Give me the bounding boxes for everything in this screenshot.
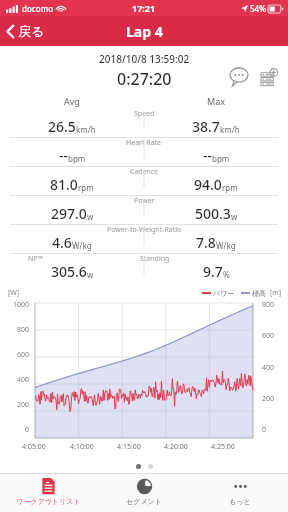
staticText: Lap 4	[126, 22, 163, 41]
staticText: W/kg	[72, 240, 92, 251]
staticText: --	[59, 146, 68, 165]
staticText: Power	[134, 196, 155, 206]
button[interactable]: Cadence	[0, 167, 288, 196]
staticText: 400	[17, 375, 30, 385]
staticText: 17:21	[132, 2, 156, 14]
staticText: Power-to-Weight-Ratio	[107, 225, 182, 235]
staticText: ワークアウトリスト	[16, 497, 81, 506]
staticText: 0:27:20	[117, 68, 172, 90]
staticText: [W]	[8, 288, 20, 298]
staticText: 800	[17, 325, 30, 335]
staticText: 305.6	[51, 262, 87, 281]
button[interactable]: Comment	[227, 65, 251, 89]
staticText: [m]	[270, 288, 282, 298]
staticText: 94.0	[194, 175, 222, 194]
staticText: 800	[262, 300, 275, 310]
staticText: km/h	[220, 124, 240, 135]
button[interactable]: NP™	[0, 254, 288, 283]
button[interactable]: Add data	[257, 65, 281, 89]
staticText: 4.6	[52, 233, 72, 252]
staticText: 81.0	[50, 175, 78, 194]
staticText: 7.8	[196, 233, 216, 252]
staticText: パワー	[213, 289, 235, 298]
staticText: 4:05:00	[22, 442, 46, 452]
staticText: Heart Rate	[126, 138, 162, 148]
button[interactable]: セグメント	[96, 474, 192, 512]
button[interactable]: もっと	[192, 474, 288, 512]
staticText: docomo	[22, 3, 54, 14]
staticText: 38.7	[192, 117, 220, 136]
staticText: 54%	[250, 3, 266, 14]
staticText: rpm	[78, 182, 94, 193]
staticText: 戻る	[18, 23, 45, 39]
button[interactable]: ワークアウトリスト	[0, 474, 96, 512]
button[interactable]: Power-to-Weight-Ratio	[0, 225, 288, 254]
staticText: 600	[17, 350, 30, 360]
staticText: 297.0	[51, 204, 87, 223]
staticText: bpm	[68, 153, 86, 164]
button[interactable]: Heart Rate	[0, 138, 288, 167]
staticText: Avg	[64, 95, 80, 107]
staticText: NP™	[28, 254, 43, 264]
staticText: 4:20:00	[164, 442, 188, 452]
staticText: --	[203, 146, 212, 165]
staticText: Cadence	[130, 167, 159, 177]
staticText: Max	[207, 95, 225, 107]
button[interactable]: Speed	[0, 109, 288, 138]
staticText: rpm	[222, 182, 238, 193]
staticText: 9.7	[203, 262, 223, 281]
staticText: W/kg	[216, 240, 236, 251]
staticText: Standing	[140, 254, 170, 264]
staticText: 26.5	[48, 117, 76, 136]
button[interactable]: Power	[0, 196, 288, 225]
staticText: 500.3	[195, 204, 231, 223]
staticText: 4:15:00	[117, 442, 141, 452]
staticText: 200	[17, 400, 30, 410]
staticText: bpm	[212, 153, 230, 164]
staticText: 0	[262, 425, 267, 435]
staticText: Speed	[134, 109, 155, 119]
staticText: w	[231, 211, 238, 222]
staticText: 4:25:00	[211, 442, 235, 452]
staticText: セグメント	[126, 497, 162, 506]
staticText: もっと	[229, 497, 251, 506]
button[interactable]: 戻る	[0, 16, 53, 46]
staticText: 200	[262, 394, 275, 404]
staticText: 600	[262, 331, 275, 341]
staticText: w	[87, 269, 94, 280]
staticText: w	[87, 211, 94, 222]
staticText: 標高	[252, 289, 266, 298]
staticText: 400	[262, 363, 275, 373]
staticText: %	[223, 269, 230, 280]
staticText: 2018/10/8 13:59:02	[99, 52, 190, 66]
staticText: km/h	[76, 124, 96, 135]
staticText: 1000	[13, 300, 30, 310]
staticText: 4:10:00	[70, 442, 94, 452]
staticText: 0	[25, 425, 30, 435]
